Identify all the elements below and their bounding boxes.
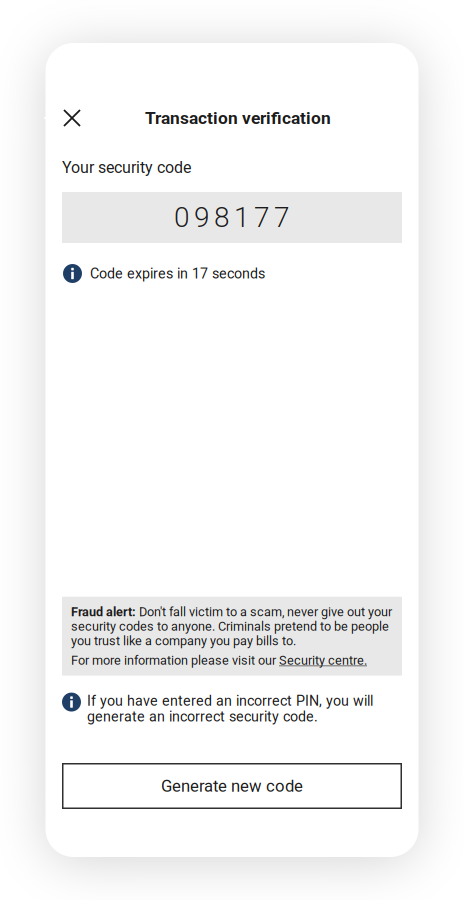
staticText: 098177 [174, 201, 290, 234]
staticText: Generate new code [161, 776, 303, 796]
staticText: Your security code [62, 158, 191, 177]
staticText: For more information please visit our Se… [71, 653, 367, 668]
staticText: Code expires in 17 seconds [90, 265, 265, 282]
staticText: Transaction verification [145, 108, 331, 128]
staticText: Fraud alert: Don't fall victim to a scam… [71, 605, 392, 648]
button[interactable]: Close [57, 103, 87, 133]
button[interactable]: Generate new code [62, 763, 402, 809]
staticText: If you have entered an incorrect PIN, yo… [87, 693, 373, 725]
